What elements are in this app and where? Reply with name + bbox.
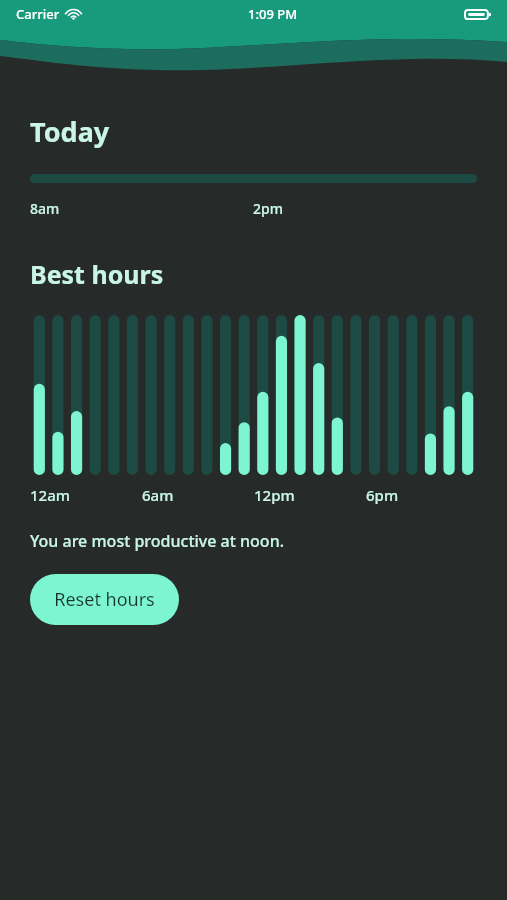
- staticText: 12am: [30, 485, 70, 505]
- staticText: 2pm: [253, 199, 283, 218]
- staticText: 8am: [30, 199, 60, 218]
- staticText: Carrier: [16, 5, 60, 23]
- staticText: Reset hours: [54, 587, 155, 612]
- staticText: 6pm: [366, 485, 399, 505]
- staticText: 1:09 PM: [248, 5, 298, 23]
- staticText: Today: [30, 113, 110, 150]
- staticText: Best hours: [30, 257, 164, 291]
- staticText: 6am: [142, 485, 174, 505]
- staticText: You are most productive at noon.: [30, 530, 285, 552]
- staticText: 12pm: [254, 485, 295, 505]
- button[interactable]: Reset hours: [30, 574, 179, 625]
